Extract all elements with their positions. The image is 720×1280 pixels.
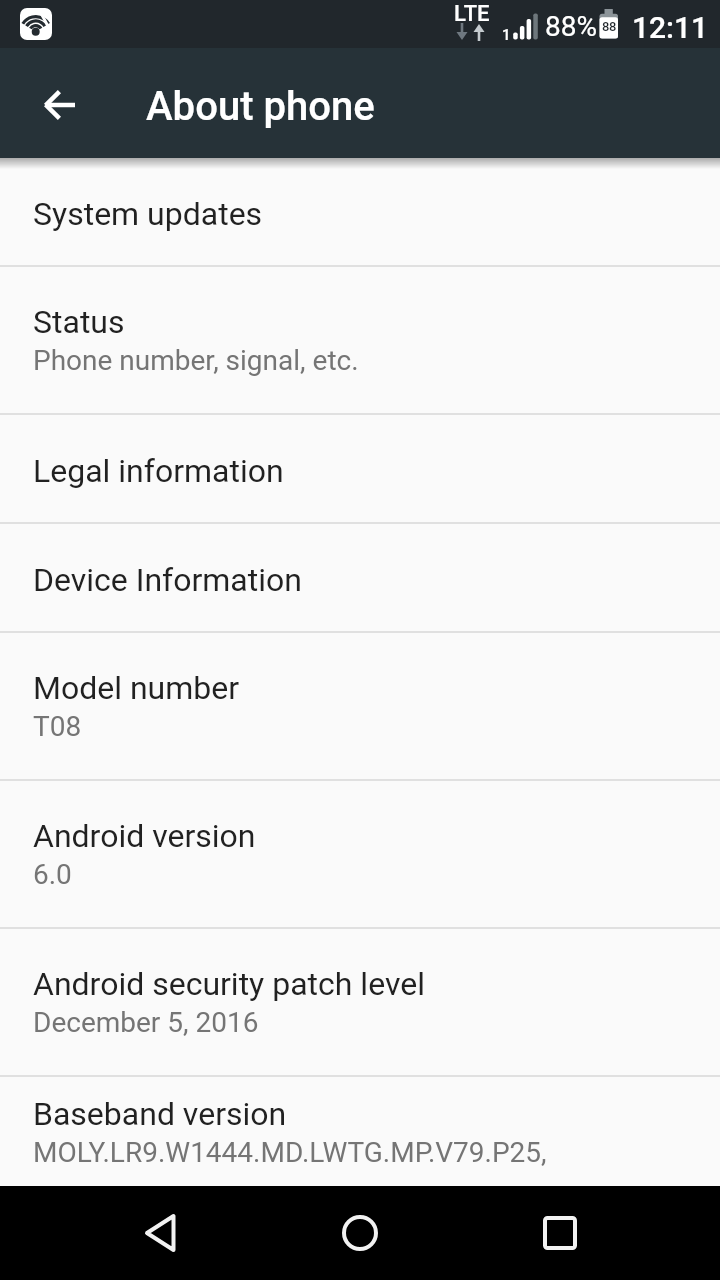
staticText: Baseband version — [33, 1095, 287, 1133]
staticText: 1 — [502, 26, 511, 44]
staticText: About phone — [146, 83, 375, 130]
button[interactable] — [310, 1186, 410, 1280]
button[interactable]: System updates — [0, 158, 720, 265]
staticText: Status — [33, 303, 125, 341]
button[interactable]: Status — [0, 267, 720, 413]
button[interactable]: Legal information — [0, 415, 720, 522]
staticText: 6.0 — [33, 858, 72, 891]
button[interactable]: Android version — [0, 781, 720, 927]
staticText: Android security patch level — [33, 965, 425, 1003]
staticText: Phone number, signal, etc. — [33, 344, 359, 377]
staticText: Model number — [33, 669, 240, 707]
staticText: Android version — [33, 817, 256, 855]
staticText: 88 — [602, 19, 616, 34]
staticText: T08 — [33, 710, 82, 743]
staticText: MOLY.LR9.W1444.MD.LWTG.MP.V79.P25, — [33, 1136, 547, 1169]
staticText: System updates — [33, 195, 263, 233]
button[interactable]: Android security patch level — [0, 929, 720, 1075]
button[interactable] — [24, 69, 96, 141]
button[interactable]: Model number — [0, 633, 720, 779]
staticText: Legal information — [33, 452, 284, 490]
button[interactable]: Device Information — [0, 524, 720, 631]
button[interactable] — [510, 1186, 610, 1280]
staticText: December 5, 2016 — [33, 1006, 259, 1039]
staticText: 88% — [545, 10, 597, 43]
staticText: Device Information — [33, 561, 302, 599]
staticText: LTE — [454, 1, 490, 27]
button[interactable] — [110, 1186, 210, 1280]
staticText: 12:11 — [632, 10, 709, 45]
button[interactable]: Baseband version — [0, 1077, 720, 1186]
